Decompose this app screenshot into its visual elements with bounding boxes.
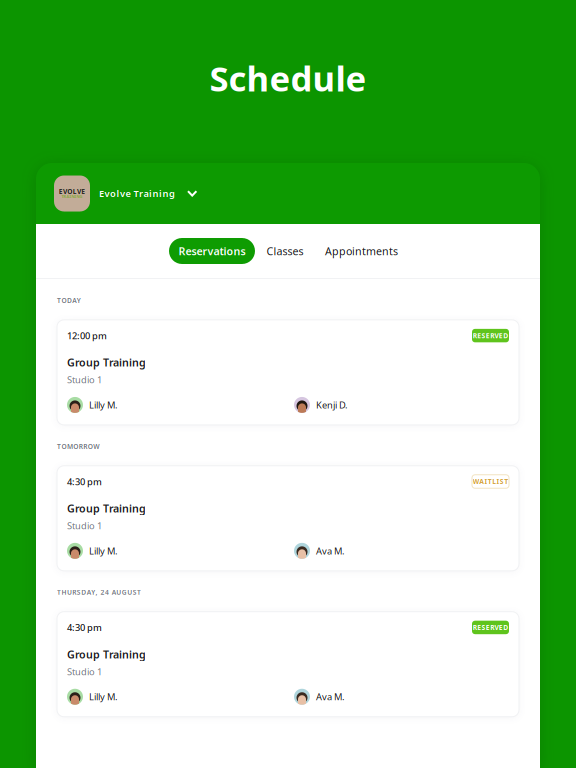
button[interactable]: Appointments <box>323 238 400 264</box>
staticText: Appointments <box>325 244 398 258</box>
staticText: Reservations <box>178 244 245 258</box>
staticText: EVOLVE <box>59 187 85 196</box>
staticText: TODAY <box>57 296 81 305</box>
staticText: Evolve Training <box>99 187 175 200</box>
staticText: TOMORROW <box>57 442 99 451</box>
staticText: 12:00 pm <box>67 329 107 342</box>
button[interactable]: EVOLVE <box>54 175 197 211</box>
staticText: Lilly M. <box>89 690 118 703</box>
staticText: Kenji D. <box>316 399 348 411</box>
button[interactable]: 4:30 pm <box>57 466 519 571</box>
button[interactable]: Classes <box>264 238 306 264</box>
staticText: Studio 1 <box>67 665 102 678</box>
staticText: Lilly M. <box>89 399 118 411</box>
staticText: TRAINING <box>61 194 82 199</box>
button[interactable]: 12:00 pm <box>57 320 519 425</box>
staticText: Ava M. <box>316 690 345 703</box>
staticText: Ava M. <box>316 545 345 557</box>
staticText: Group Training <box>67 501 146 515</box>
staticText: THURSDAY, 24 AUGUST <box>57 588 141 597</box>
staticText: RESERVED <box>473 331 508 340</box>
staticText: Lilly M. <box>89 545 118 557</box>
staticText: Group Training <box>67 647 146 661</box>
staticText: Studio 1 <box>67 373 102 386</box>
staticText: Studio 1 <box>67 519 102 532</box>
staticText: Classes <box>266 244 303 258</box>
staticText: WAITLIST <box>473 477 508 486</box>
staticText: 4:30 pm <box>67 621 102 634</box>
button[interactable]: Reservations <box>169 238 255 264</box>
staticText: 4:30 pm <box>67 475 102 488</box>
button[interactable]: 4:30 pm <box>57 612 519 717</box>
staticText: Schedule <box>209 55 366 101</box>
staticText: RESERVED <box>473 623 508 632</box>
staticText: Group Training <box>67 355 146 370</box>
